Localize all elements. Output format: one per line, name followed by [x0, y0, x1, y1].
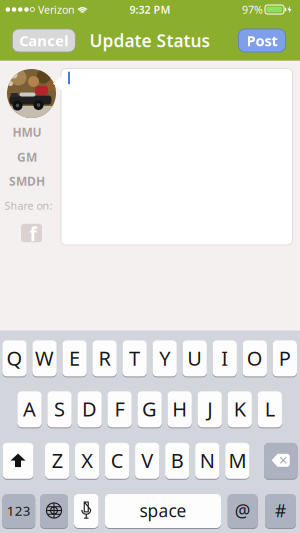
staticText: H	[172, 395, 187, 422]
staticText: Y	[159, 345, 170, 371]
staticText: E	[69, 345, 80, 371]
button[interactable]: Y	[152, 340, 177, 377]
button[interactable]: A	[17, 391, 42, 428]
staticText: Cancel	[19, 31, 68, 50]
staticText: T	[129, 345, 140, 371]
staticText: J	[207, 395, 212, 422]
staticText: S	[54, 395, 65, 422]
staticText: D	[82, 395, 97, 422]
staticText: F	[115, 395, 125, 422]
staticText: X	[81, 447, 93, 474]
staticText: #	[275, 499, 286, 522]
button[interactable]: E	[62, 340, 87, 377]
button[interactable]: T	[122, 340, 147, 377]
staticText: 97%	[242, 2, 263, 17]
staticText: 123	[7, 502, 31, 519]
button[interactable]: #	[265, 494, 296, 529]
button[interactable]: HMU	[5, 124, 49, 140]
staticText: R	[99, 345, 111, 371]
button[interactable]: C	[105, 443, 129, 480]
button[interactable]: Dictate	[74, 494, 98, 529]
staticText: I	[221, 345, 228, 371]
button[interactable]: N	[195, 443, 220, 480]
button[interactable]: W	[32, 340, 57, 377]
button[interactable]: G	[137, 391, 162, 428]
staticText: G	[142, 395, 157, 422]
staticText: L	[265, 395, 275, 422]
staticText: C	[111, 447, 124, 474]
button[interactable]: Q	[2, 340, 27, 377]
staticText: M	[228, 447, 246, 474]
staticText: W	[35, 345, 54, 371]
button[interactable]: U	[182, 340, 207, 377]
button[interactable]: Next keyboard	[40, 494, 68, 529]
button[interactable]: space	[105, 494, 221, 529]
staticText: f	[29, 222, 36, 246]
button[interactable]: Cancel	[12, 29, 75, 52]
button[interactable]: D	[77, 391, 102, 428]
button[interactable]: H	[167, 391, 192, 428]
staticText: Verizon	[38, 2, 75, 17]
button[interactable]: Shift	[2, 443, 33, 480]
button[interactable]: Share on Facebook	[21, 221, 42, 245]
staticText: Z	[52, 447, 63, 474]
button[interactable]: Post	[238, 29, 285, 52]
button[interactable]: R	[92, 340, 117, 377]
staticText: N	[200, 447, 215, 474]
button[interactable]: V	[135, 443, 159, 480]
button[interactable]: K	[227, 391, 252, 428]
button[interactable]: P	[273, 340, 297, 377]
staticText: B	[171, 447, 184, 474]
staticText: Q	[6, 345, 22, 371]
staticText: V	[141, 447, 153, 474]
staticText: Update Status	[89, 29, 210, 52]
button[interactable]: Delete	[264, 443, 297, 480]
staticText: A	[23, 395, 36, 422]
staticText: Share on:	[4, 198, 52, 213]
button[interactable]: SMDH	[5, 173, 49, 189]
button[interactable]: Z	[45, 443, 69, 480]
button[interactable]: S	[47, 391, 72, 428]
button[interactable]: GM	[5, 149, 49, 165]
button[interactable]: 123	[2, 494, 35, 529]
button[interactable]: J	[197, 391, 222, 428]
staticText: P	[279, 345, 291, 371]
staticText: U	[187, 345, 202, 371]
staticText: O	[247, 345, 263, 371]
button[interactable]: M	[225, 443, 250, 480]
staticText: 9:32 PM	[129, 2, 170, 17]
staticText: GM	[17, 149, 37, 165]
staticText: SMDH	[9, 173, 45, 189]
button[interactable]: L	[257, 391, 282, 428]
button[interactable]: @	[228, 494, 258, 529]
staticText: K	[234, 395, 246, 422]
staticText: HMU	[12, 124, 41, 140]
button[interactable]: B	[165, 443, 189, 480]
button[interactable]: F	[107, 391, 132, 428]
button[interactable]: X	[75, 443, 99, 480]
staticText: Post	[246, 31, 277, 50]
button[interactable]: O	[242, 340, 267, 377]
button[interactable]: I	[212, 340, 237, 377]
staticText: space	[139, 499, 186, 522]
staticText: @	[235, 499, 251, 522]
